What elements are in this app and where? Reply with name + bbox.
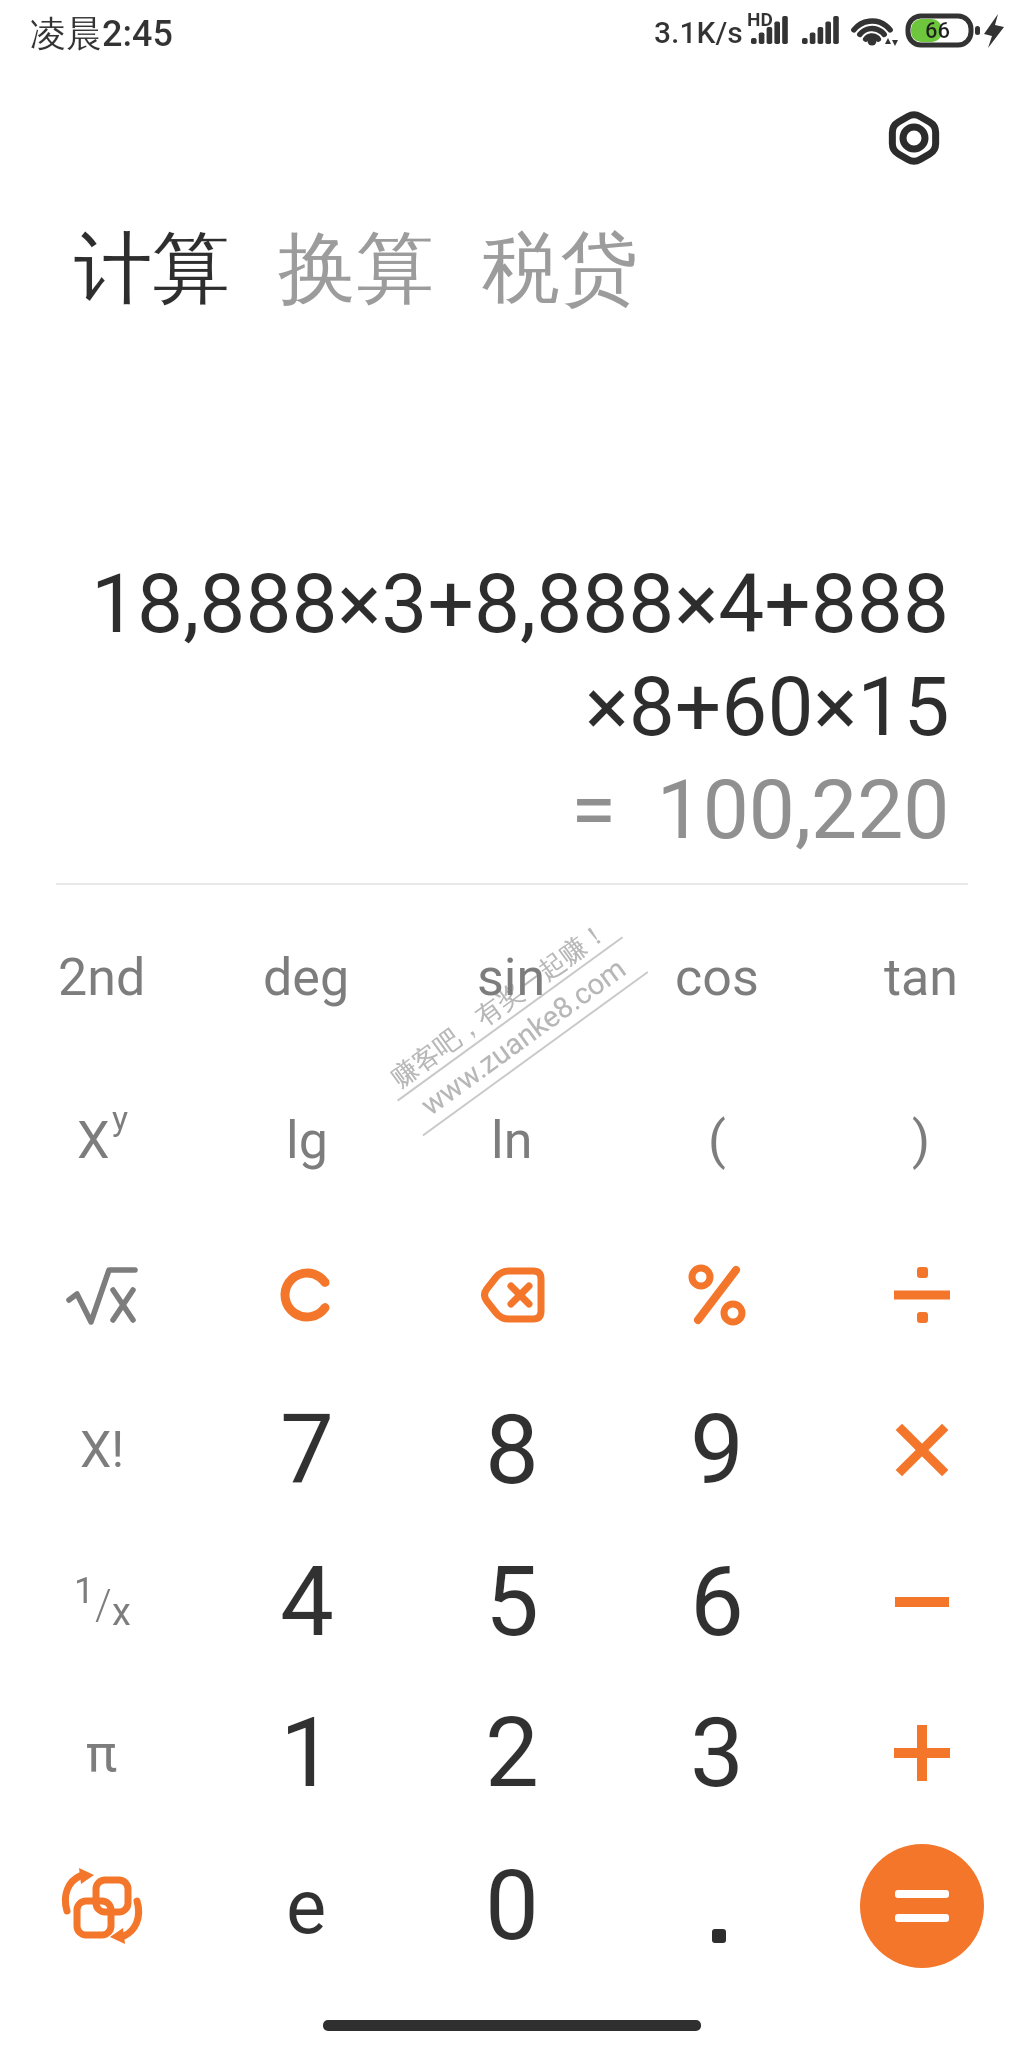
staticText: 66 xyxy=(925,18,951,44)
staticText: 3.1K/s xyxy=(654,15,743,50)
staticText: lg xyxy=(286,1110,328,1171)
button[interactable] xyxy=(0,1831,204,1981)
button[interactable]: ( xyxy=(614,1065,819,1215)
button[interactable]: 6 xyxy=(614,1527,819,1677)
staticText: 2 xyxy=(485,1697,539,1810)
staticText: y xyxy=(112,1098,129,1138)
staticText: 3 xyxy=(690,1697,744,1810)
staticText: 税贷 xyxy=(482,220,638,318)
staticText: 5 xyxy=(485,1546,539,1659)
staticText: x xyxy=(112,1590,131,1635)
button[interactable] xyxy=(204,1220,409,1370)
button[interactable] xyxy=(860,1844,984,1968)
button[interactable]: 0 xyxy=(409,1831,614,1981)
button[interactable]: cos xyxy=(614,902,819,1052)
button[interactable]: 1 xyxy=(0,1527,204,1677)
staticText: tan xyxy=(884,947,959,1008)
button[interactable]: 计算 xyxy=(74,220,230,318)
button[interactable]: 换算 xyxy=(278,220,434,318)
button[interactable]: X! xyxy=(0,1375,204,1525)
staticText: 换算 xyxy=(278,220,434,318)
staticText: 18,888×3+8,888×4+888 xyxy=(91,556,950,652)
staticText: deg xyxy=(263,947,350,1008)
staticText: 0 xyxy=(485,1850,539,1963)
button[interactable]: lg xyxy=(204,1065,409,1215)
button[interactable]: 4 xyxy=(204,1527,409,1677)
staticText: e xyxy=(286,1862,327,1951)
staticText: cos xyxy=(675,947,759,1008)
button[interactable]: deg xyxy=(204,902,409,1052)
staticText: π xyxy=(86,1723,118,1784)
button[interactable] xyxy=(614,1831,819,1981)
staticText: 8 xyxy=(485,1394,539,1507)
staticText: HD xyxy=(747,8,773,30)
button[interactable]: e xyxy=(204,1831,409,1981)
button[interactable] xyxy=(819,1220,1024,1370)
staticText: 7 xyxy=(280,1394,334,1507)
staticText: 4 xyxy=(280,1546,334,1659)
staticText: X! xyxy=(80,1421,125,1480)
button[interactable] xyxy=(409,1220,614,1370)
button[interactable]: 8 xyxy=(409,1375,614,1525)
button[interactable]: tan xyxy=(819,902,1024,1052)
button[interactable] xyxy=(614,1220,819,1370)
button[interactable] xyxy=(884,108,944,168)
button[interactable]: ln xyxy=(409,1065,614,1215)
staticText: ) xyxy=(912,1110,931,1171)
staticText: sin xyxy=(477,947,546,1008)
button[interactable]: 3 xyxy=(614,1678,819,1828)
staticText: ( xyxy=(708,1110,726,1171)
staticText: X xyxy=(77,1110,110,1171)
button[interactable]: 9 xyxy=(614,1375,819,1525)
button[interactable] xyxy=(0,1220,204,1370)
staticText: 2nd xyxy=(58,947,146,1008)
staticText: / xyxy=(95,1580,112,1629)
button[interactable] xyxy=(819,1678,1024,1828)
button[interactable]: 2 xyxy=(409,1678,614,1828)
staticText: www.zuanke8.com xyxy=(414,951,632,1122)
staticText: 计算 xyxy=(74,220,230,318)
staticText: ×8+60×15 xyxy=(585,659,950,755)
staticText: 6 xyxy=(690,1546,744,1659)
button[interactable]: 税贷 xyxy=(482,220,638,318)
staticText: 凌晨2:45 xyxy=(30,11,173,56)
staticText: 1 xyxy=(74,1570,95,1612)
staticText: ln xyxy=(491,1110,533,1171)
button[interactable]: 5 xyxy=(409,1527,614,1677)
button[interactable]: π xyxy=(0,1678,204,1828)
button[interactable]: 7 xyxy=(204,1375,409,1525)
staticText: 9 xyxy=(690,1394,744,1507)
button[interactable]: X xyxy=(0,1065,204,1215)
button[interactable]: ) xyxy=(819,1065,1024,1215)
staticText: = 100,220 xyxy=(571,762,950,858)
button[interactable]: 1 xyxy=(204,1678,409,1828)
button[interactable] xyxy=(819,1527,1024,1677)
button[interactable] xyxy=(819,1375,1024,1525)
staticText: 赚客吧，有奖一起赚！ xyxy=(385,915,615,1094)
button[interactable]: sin xyxy=(409,902,614,1052)
button[interactable]: 2nd xyxy=(0,902,204,1052)
staticText: 1 xyxy=(280,1697,334,1810)
